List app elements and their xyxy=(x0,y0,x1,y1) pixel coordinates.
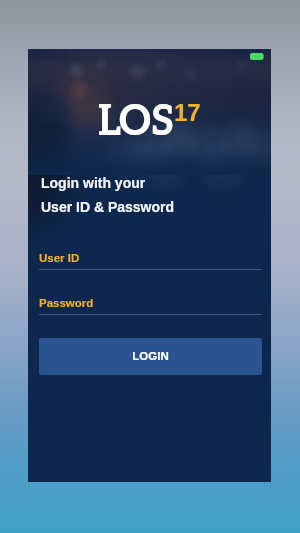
staticText: 17 xyxy=(174,99,201,126)
staticText: Login with your xyxy=(41,175,146,191)
button[interactable]: User ID xyxy=(28,252,271,280)
staticText: Password xyxy=(39,297,94,310)
staticText: Carrier xyxy=(32,53,57,61)
button[interactable]: Password xyxy=(28,297,271,325)
staticText: User ID & Password xyxy=(41,199,175,215)
staticText: LOS xyxy=(98,98,174,147)
staticText: User ID xyxy=(39,252,80,265)
staticText: 3:27 PM xyxy=(143,52,176,61)
button[interactable]: LOGIN xyxy=(39,338,262,375)
staticText: LOGIN xyxy=(132,350,169,363)
